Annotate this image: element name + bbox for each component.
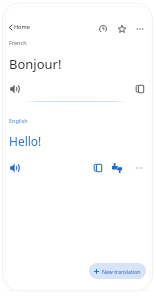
button[interactable]: Home bbox=[14, 23, 30, 30]
staticText: Hello! bbox=[9, 133, 42, 149]
button[interactable]: New translation bbox=[89, 263, 146, 279]
button[interactable]: Listen bbox=[8, 82, 22, 96]
staticText: Bonjour! bbox=[9, 55, 62, 73]
staticText: Home bbox=[14, 23, 30, 30]
button[interactable]: More options bbox=[132, 161, 146, 175]
button[interactable]: Listen bbox=[8, 161, 22, 175]
staticText: New translation bbox=[102, 268, 141, 275]
button[interactable]: History bbox=[96, 22, 110, 36]
button[interactable]: Copy bbox=[133, 82, 147, 96]
button[interactable]: More options bbox=[133, 22, 147, 36]
staticText: English bbox=[9, 117, 28, 124]
staticText: French bbox=[9, 39, 27, 46]
button[interactable]: Copy bbox=[91, 161, 105, 175]
button[interactable]: Rate this translation bbox=[110, 161, 124, 175]
button[interactable]: Saved bbox=[115, 22, 129, 36]
button[interactable]: Back bbox=[3, 20, 17, 34]
